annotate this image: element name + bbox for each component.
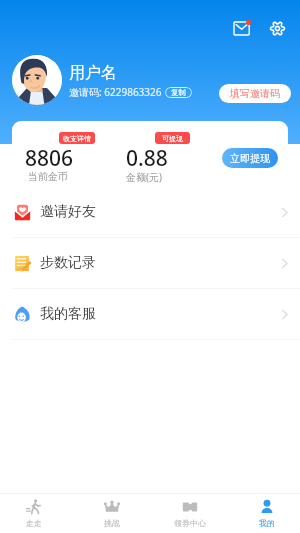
staticText: 金额(元) [126, 170, 162, 184]
staticText: 当前金币 [28, 170, 68, 183]
button[interactable]: 立即提现 [222, 148, 278, 168]
staticText: 收支详情 [63, 134, 91, 143]
staticText: 用户名 [69, 63, 117, 83]
button[interactable]: 填写邀请码 [219, 84, 291, 103]
staticText: 挑战 [104, 518, 120, 528]
staticText: 立即提现 [230, 152, 270, 165]
staticText: 填写邀请码 [230, 87, 280, 100]
button[interactable]: 领券中心 [151, 494, 228, 533]
button[interactable]: 我的客服 [0, 289, 300, 339]
button[interactable]: 收支详情 [59, 132, 95, 144]
staticText: 我的客服 [40, 305, 96, 323]
staticText: 复制 [171, 88, 186, 97]
button[interactable]: Avatar [12, 55, 62, 105]
staticText: 领券中心 [174, 518, 206, 528]
staticText: 邀请码: 6229863326 [69, 85, 162, 99]
staticText: 走走 [26, 518, 42, 528]
button[interactable]: Settings [263, 14, 291, 42]
button[interactable]: 可提现 [155, 132, 190, 144]
staticText: 邀请好友 [40, 203, 96, 221]
button[interactable]: 我的 [228, 494, 300, 533]
staticText: 0.88 [126, 144, 168, 173]
staticText: 我的 [259, 518, 275, 528]
button[interactable]: 走走 [0, 494, 72, 533]
button[interactable]: Messages [228, 14, 256, 42]
staticText: 8806 [25, 144, 74, 173]
button[interactable]: 步数记录 [0, 238, 300, 288]
staticText: 步数记录 [40, 254, 96, 272]
button[interactable]: 复制 [165, 87, 192, 98]
button[interactable]: 邀请好友 [0, 187, 300, 237]
staticText: 可提现 [162, 134, 183, 143]
button[interactable]: 挑战 [73, 494, 150, 533]
